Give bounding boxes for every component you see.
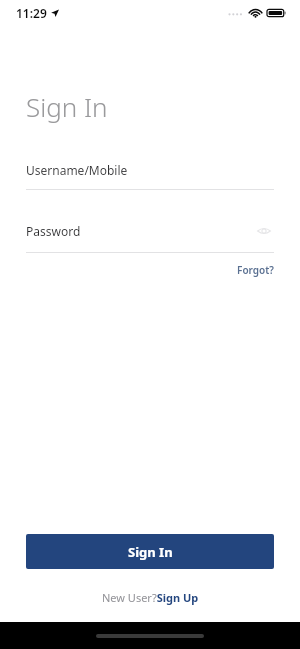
staticText: Sign In	[128, 543, 173, 561]
staticText: New User?Sign Up	[102, 590, 199, 605]
staticText: 11:29	[16, 5, 47, 21]
button[interactable]: Sign In	[26, 534, 274, 569]
staticText: Sign In	[26, 89, 108, 124]
button[interactable]: Forgot?	[237, 261, 300, 279]
button[interactable]: New User?Sign Up	[98, 586, 203, 609]
staticText: Username/Mobile	[26, 162, 128, 178]
button[interactable]: Show password	[254, 221, 274, 241]
staticText: Forgot?	[237, 263, 274, 277]
staticText: Password	[26, 223, 81, 239]
